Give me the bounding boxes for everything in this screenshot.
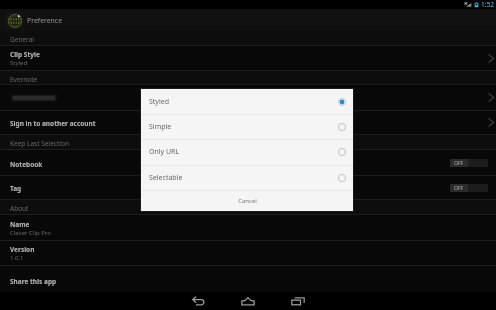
- button[interactable]: Name: [0, 215, 496, 240]
- staticText: 1:52: [481, 0, 495, 9]
- button[interactable]: Simple: [141, 115, 353, 139]
- button[interactable]: [0, 85, 496, 110]
- staticText: Version: [10, 245, 35, 254]
- staticText: Selectable: [149, 173, 343, 183]
- button[interactable]: Selectable: [141, 166, 353, 190]
- button[interactable]: Preference: [0, 9, 496, 31]
- button[interactable]: Tag: [0, 176, 496, 199]
- staticText: Share this app: [10, 277, 57, 286]
- staticText: Cancel: [238, 197, 257, 205]
- staticText: Styled: [10, 59, 28, 67]
- staticText: Sign in to another account: [10, 119, 96, 128]
- button[interactable]: Only URL: [141, 140, 353, 165]
- staticText: Name: [10, 220, 30, 229]
- staticText: About: [10, 204, 29, 213]
- button[interactable]: Notebook: [0, 150, 496, 175]
- button[interactable]: Version: [0, 241, 496, 265]
- staticText: Simple: [149, 122, 343, 132]
- staticText: Keep Last Selection: [10, 139, 69, 148]
- staticText: Styled: [149, 97, 343, 107]
- button[interactable]: Share this app: [0, 266, 496, 292]
- staticText: Tag: [10, 184, 22, 193]
- staticText: General: [10, 35, 34, 44]
- staticText: OFF: [454, 160, 464, 167]
- staticText: Clever Clip Pro: [10, 229, 51, 237]
- button[interactable]: Styled: [141, 89, 353, 114]
- staticText: Only URL: [149, 147, 343, 157]
- button[interactable]: Clip Style: [0, 46, 496, 70]
- staticText: Clip Style: [10, 50, 40, 59]
- button[interactable]: Home: [228, 292, 268, 310]
- staticText: Preference: [27, 16, 63, 25]
- button[interactable]: Back: [178, 292, 218, 310]
- staticText: Evernote: [10, 75, 38, 84]
- button[interactable]: Recent apps: [278, 292, 318, 310]
- staticText: 1.0.1: [10, 254, 24, 262]
- button[interactable]: Sign in to another account: [0, 111, 496, 134]
- button[interactable]: Cancel: [141, 191, 353, 211]
- staticText: Notebook: [10, 160, 43, 169]
- staticText: OFF: [454, 185, 464, 192]
